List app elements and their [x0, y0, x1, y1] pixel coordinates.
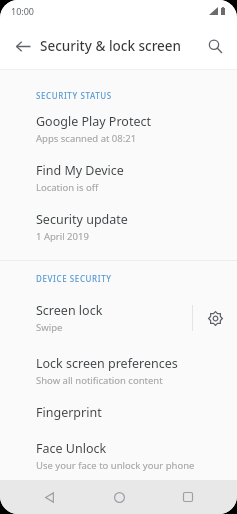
- button[interactable]: Face Unlock: [0, 440, 237, 472]
- staticText: Location is off: [36, 181, 99, 194]
- staticText: Show all notification content: [36, 374, 163, 387]
- staticText: Apps scanned at 08:21: [36, 132, 137, 145]
- staticText: Lock screen preferences: [36, 355, 178, 372]
- button[interactable]: Recent apps: [168, 480, 208, 514]
- staticText: Find My Device: [36, 162, 124, 179]
- button[interactable]: Screen lock: [0, 302, 192, 334]
- button[interactable]: Security update: [0, 211, 237, 243]
- staticText: SECURITY STATUS: [36, 90, 112, 101]
- button[interactable]: Home: [99, 480, 139, 514]
- staticText: Security update: [36, 211, 128, 228]
- staticText: Use your face to unlock your phone: [36, 459, 195, 472]
- button[interactable]: Find My Device: [0, 162, 237, 194]
- button[interactable]: Back: [6, 29, 40, 63]
- button[interactable]: Fingerprint: [0, 404, 237, 421]
- button[interactable]: Search: [198, 29, 232, 63]
- staticText: 10:00: [11, 5, 35, 17]
- staticText: Fingerprint: [36, 404, 102, 421]
- button[interactable]: Back: [29, 480, 69, 514]
- staticText: Security & lock screen: [40, 37, 182, 55]
- button[interactable]: Lock screen preferences: [0, 355, 237, 387]
- staticText: Swipe: [36, 321, 63, 334]
- staticText: DEVICE SECURITY: [36, 273, 112, 284]
- staticText: Google Play Protect: [36, 113, 151, 130]
- button[interactable]: Screen lock settings: [193, 296, 237, 340]
- staticText: Face Unlock: [36, 440, 107, 457]
- button[interactable]: Smart Lock: [0, 489, 237, 514]
- staticText: Screen lock: [36, 302, 103, 319]
- button[interactable]: Google Play Protect: [0, 113, 237, 145]
- staticText: 1 April 2019: [36, 230, 89, 243]
- staticText: Smart Lock: [36, 489, 102, 506]
